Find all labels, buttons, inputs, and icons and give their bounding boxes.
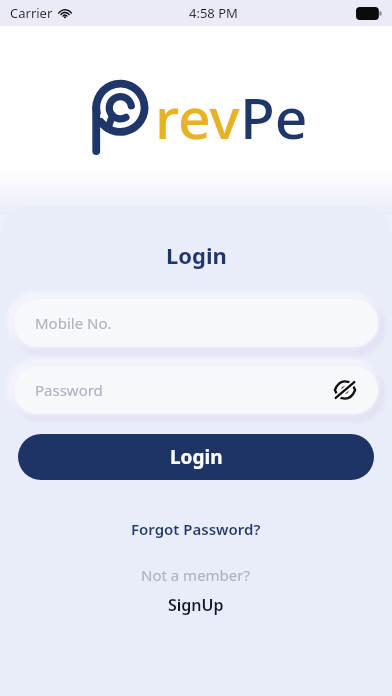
button[interactable]: Show password	[330, 375, 360, 405]
staticText: Login	[170, 444, 223, 470]
staticText: Login	[166, 240, 227, 270]
staticText: Password	[35, 380, 103, 400]
staticText: Pe	[240, 78, 308, 156]
button[interactable]: Password	[14, 366, 378, 414]
button[interactable]: Login	[18, 434, 374, 480]
button[interactable]: Forgot Password?	[123, 516, 269, 542]
staticText: Mobile No.	[35, 313, 112, 333]
staticText: rev	[155, 78, 240, 156]
staticText: SignUp	[168, 594, 224, 616]
button[interactable]: Mobile No.	[14, 299, 378, 347]
button[interactable]: SignUp	[160, 592, 232, 618]
staticText: Carrier	[10, 4, 53, 22]
staticText: Forgot Password?	[131, 519, 261, 539]
staticText: Not a member?	[141, 565, 251, 585]
staticText: 4:58 PM	[189, 4, 238, 22]
